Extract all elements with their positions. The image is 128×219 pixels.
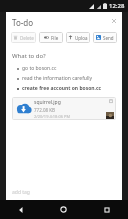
button[interactable]: Recent apps [85, 200, 128, 219]
staticText: 2/20/19 4:18:06 PM [34, 114, 71, 119]
staticText: Upload [75, 35, 88, 41]
staticText: go to boson.cc [22, 65, 57, 72]
button[interactable]: squirrel.jpg [12, 97, 116, 120]
staticText: 12:28 [109, 2, 125, 10]
staticText: File [51, 35, 59, 41]
staticText: read the information carefully [22, 75, 93, 82]
staticText: create free account on boson.cc [22, 85, 102, 92]
button[interactable]: File [39, 32, 63, 43]
button[interactable]: Back [0, 200, 42, 219]
button[interactable]: Close [110, 17, 118, 25]
staticText: Delete [20, 35, 34, 41]
staticText: add tag [12, 189, 30, 196]
button[interactable]: Delete [11, 32, 36, 43]
button[interactable]: Home [42, 200, 85, 219]
staticText: squirrel.jpg [34, 99, 61, 106]
button[interactable]: Delete attachment [107, 97, 114, 104]
button[interactable]: Send [93, 32, 117, 43]
button[interactable]: Upload [66, 32, 90, 43]
staticText: What to do? [12, 52, 46, 60]
staticText: To-do [12, 17, 34, 28]
staticText: 772.08 KB [34, 107, 55, 113]
button[interactable]: Preview squirrel.jpg [106, 112, 114, 120]
staticText: Send [103, 35, 114, 41]
